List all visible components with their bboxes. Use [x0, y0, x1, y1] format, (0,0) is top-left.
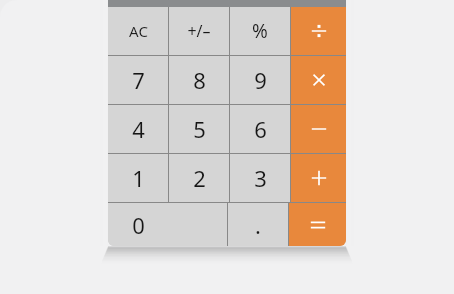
- button[interactable]: 1: [108, 154, 168, 202]
- button[interactable]: Multiply: [291, 56, 346, 104]
- staticText: AC: [129, 21, 148, 41]
- staticText: 9: [254, 65, 267, 95]
- button[interactable]: 9: [230, 56, 290, 104]
- button[interactable]: .: [228, 203, 288, 246]
- button[interactable]: 4: [108, 105, 168, 153]
- staticText: 5: [193, 114, 206, 144]
- staticText: 8: [193, 65, 206, 95]
- button[interactable]: 0: [108, 203, 227, 246]
- button[interactable]: +/–: [169, 7, 229, 55]
- staticText: 4: [132, 114, 145, 144]
- button[interactable]: Divide: [291, 7, 346, 55]
- staticText: %: [252, 18, 268, 44]
- staticText: 0: [132, 210, 145, 240]
- button[interactable]: Minus: [291, 105, 346, 153]
- staticText: .: [255, 210, 261, 240]
- button[interactable]: Plus: [291, 154, 346, 202]
- staticText: 7: [132, 65, 145, 95]
- staticText: 2: [193, 163, 206, 193]
- button[interactable]: 7: [108, 56, 168, 104]
- staticText: 3: [254, 163, 267, 193]
- button[interactable]: AC: [108, 7, 168, 55]
- button[interactable]: 5: [169, 105, 229, 153]
- button[interactable]: %: [230, 7, 290, 55]
- button[interactable]: Equals: [289, 203, 346, 246]
- staticText: 1: [132, 163, 145, 193]
- button[interactable]: 2: [169, 154, 229, 202]
- button[interactable]: 3: [230, 154, 290, 202]
- staticText: +/–: [187, 20, 211, 42]
- staticText: 6: [254, 114, 267, 144]
- button[interactable]: 8: [169, 56, 229, 104]
- button[interactable]: 6: [230, 105, 290, 153]
